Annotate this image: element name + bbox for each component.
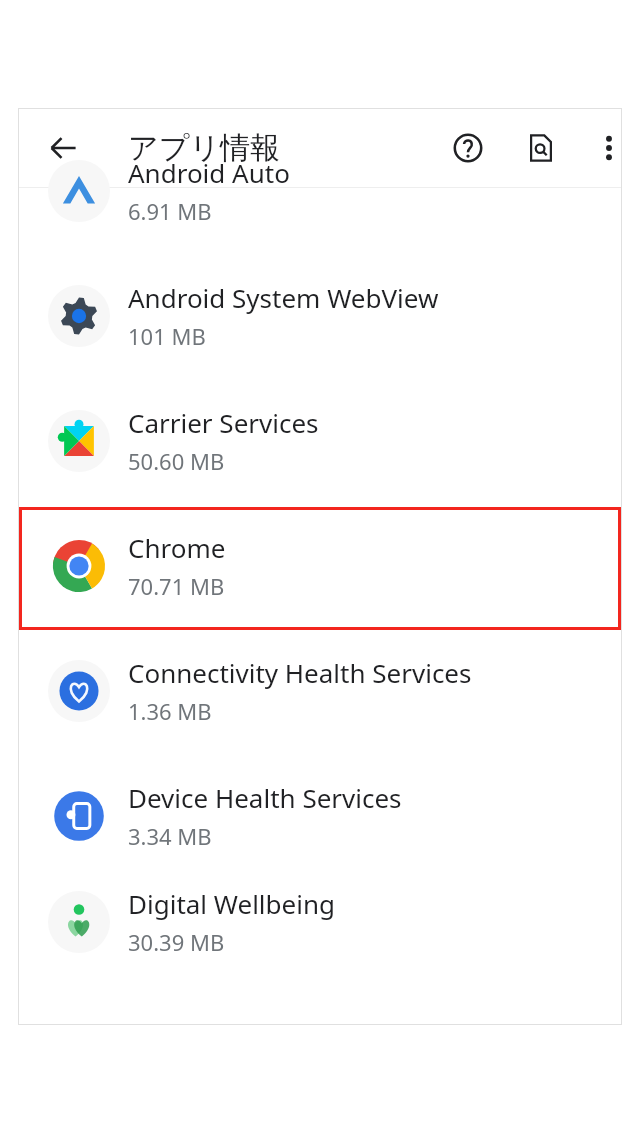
button[interactable]: Carrier Services bbox=[18, 378, 622, 503]
staticText: Connectivity Health Services bbox=[128, 655, 472, 690]
button[interactable]: Help bbox=[443, 123, 493, 173]
staticText: 50.60 MB bbox=[128, 446, 225, 476]
staticText: 70.71 MB bbox=[128, 571, 225, 601]
button[interactable]: Device Health Services bbox=[18, 753, 622, 878]
staticText: 101 MB bbox=[128, 321, 206, 351]
button[interactable]: Back bbox=[38, 123, 88, 173]
staticText: Device Health Services bbox=[128, 780, 402, 815]
staticText: Digital Wellbeing bbox=[128, 886, 335, 921]
button[interactable]: Chrome bbox=[18, 503, 622, 628]
button[interactable]: More options bbox=[584, 123, 634, 173]
staticText: Android Auto bbox=[128, 155, 290, 190]
button[interactable]: Android System WebView bbox=[18, 253, 622, 378]
staticText: アプリ情報 bbox=[128, 129, 281, 167]
staticText: Android System WebView bbox=[128, 280, 439, 315]
staticText: 6.91 MB bbox=[128, 196, 212, 226]
staticText: 3.34 MB bbox=[128, 821, 212, 851]
button[interactable]: Connectivity Health Services bbox=[18, 628, 622, 753]
staticText: Carrier Services bbox=[128, 405, 319, 440]
staticText: 1.36 MB bbox=[128, 696, 212, 726]
button[interactable]: Search app info bbox=[516, 123, 566, 173]
button[interactable]: Digital Wellbeing bbox=[18, 878, 622, 965]
staticText: 30.39 MB bbox=[128, 927, 225, 957]
button[interactable]: Android Auto bbox=[18, 128, 622, 253]
staticText: Chrome bbox=[128, 530, 226, 565]
